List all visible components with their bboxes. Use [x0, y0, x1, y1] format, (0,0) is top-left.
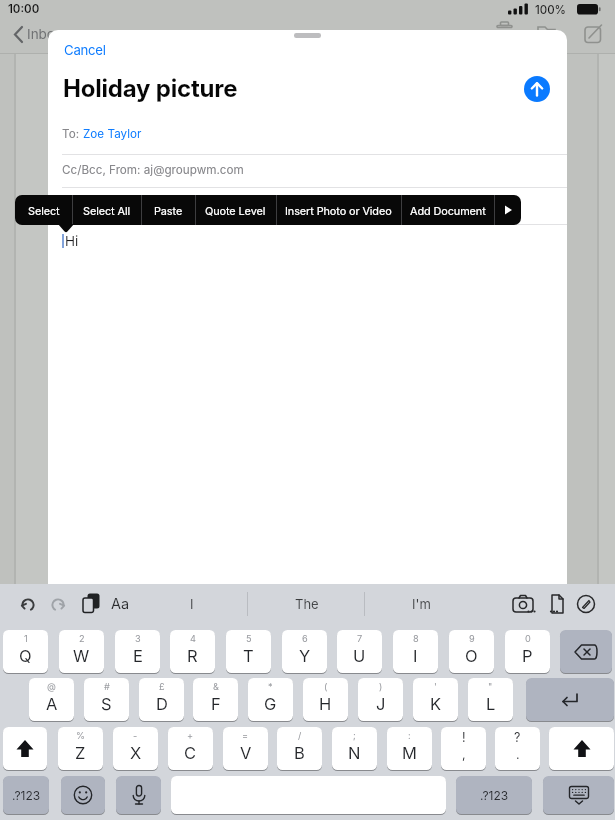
staticText: ;: [353, 730, 356, 741]
button[interactable]: Select: [15, 195, 72, 225]
staticText: (: [324, 681, 328, 692]
staticText: Add Document: [410, 204, 486, 217]
staticText: F: [211, 694, 221, 714]
staticText: S: [101, 694, 112, 714]
button[interactable]: &: [193, 678, 238, 721]
staticText: .?123: [12, 788, 41, 803]
button[interactable]: [543, 776, 614, 814]
staticText: M: [402, 743, 417, 763]
staticText: Z: [75, 743, 86, 763]
staticText: P: [522, 646, 533, 666]
staticText: .?123: [480, 788, 509, 803]
button[interactable]: /: [277, 727, 322, 770]
button[interactable]: Paste: [141, 195, 195, 225]
button[interactable]: [61, 776, 105, 814]
staticText: N: [348, 743, 361, 763]
staticText: 10:00: [8, 2, 40, 16]
button[interactable]: Cancel: [64, 42, 106, 58]
staticText: L: [486, 694, 496, 714]
staticText: H: [319, 694, 332, 714]
staticText: C: [184, 743, 197, 763]
button[interactable]: 0: [505, 630, 550, 673]
staticText: ': [434, 681, 437, 692]
button[interactable]: %: [58, 727, 103, 770]
button[interactable]: [560, 630, 612, 673]
staticText: Q: [19, 646, 32, 666]
staticText: 0: [525, 633, 531, 644]
button[interactable]: Select All: [72, 195, 141, 225]
staticText: O: [465, 646, 478, 666]
staticText: R: [187, 646, 198, 666]
staticText: =: [242, 730, 249, 741]
staticText: 4: [190, 633, 196, 644]
button[interactable]: ): [358, 678, 403, 721]
staticText: ): [379, 681, 383, 692]
button[interactable]: :: [387, 727, 432, 770]
staticText: Aa: [111, 595, 130, 613]
button[interactable]: [494, 195, 521, 225]
button[interactable]: @: [29, 678, 74, 721]
staticText: U: [353, 646, 366, 666]
staticText: G: [264, 694, 277, 714]
button[interactable]: [3, 727, 47, 770]
button[interactable]: ?: [495, 727, 540, 770]
staticText: 9: [469, 633, 475, 644]
staticText: .: [516, 747, 520, 762]
button[interactable]: 3: [115, 630, 160, 673]
button[interactable]: .?123: [456, 776, 532, 814]
button[interactable]: .?123: [3, 776, 49, 814]
staticText: Zoe Taylor: [83, 127, 142, 141]
button[interactable]: Add Document: [401, 195, 494, 225]
button[interactable]: (: [303, 678, 348, 721]
button[interactable]: !: [441, 727, 486, 770]
button[interactable]: Quote Level: [195, 195, 276, 225]
staticText: ": [488, 681, 493, 692]
button[interactable]: Cc/Bcc, From: aj@groupwm.com: [62, 163, 244, 177]
button[interactable]: #: [84, 678, 129, 721]
button[interactable]: [524, 76, 550, 102]
staticText: Inbox: [27, 26, 63, 42]
staticText: T: [243, 646, 254, 666]
staticText: £: [159, 681, 165, 692]
button[interactable]: 2: [59, 630, 104, 673]
staticText: Quote Level: [205, 204, 266, 217]
staticText: V: [240, 743, 252, 763]
staticText: 3: [135, 633, 141, 644]
button[interactable]: *: [248, 678, 293, 721]
staticText: Cc/Bcc, From: aj@groupwm.com: [62, 163, 244, 177]
button[interactable]: 5: [226, 630, 271, 673]
staticText: 8: [413, 633, 419, 644]
staticText: Paste: [154, 204, 183, 217]
button[interactable]: 8: [393, 630, 438, 673]
staticText: 7: [357, 633, 363, 644]
button[interactable]: 9: [449, 630, 494, 673]
button[interactable]: [526, 678, 614, 721]
staticText: Hi: [65, 233, 79, 249]
staticText: W: [73, 646, 90, 666]
staticText: :: [408, 730, 411, 741]
staticText: %: [76, 730, 86, 741]
staticText: B: [294, 743, 305, 763]
staticText: E: [133, 646, 143, 666]
button[interactable]: ': [413, 678, 458, 721]
button[interactable]: To:: [62, 127, 142, 141]
button[interactable]: £: [139, 678, 184, 721]
button[interactable]: [116, 776, 161, 814]
button[interactable]: =: [223, 727, 268, 770]
button[interactable]: 7: [337, 630, 382, 673]
button[interactable]: +: [168, 727, 213, 770]
staticText: #: [104, 681, 110, 692]
staticText: Holiday picture: [63, 74, 238, 103]
button[interactable]: -: [113, 727, 158, 770]
button[interactable]: 1: [3, 630, 48, 673]
button[interactable]: 6: [282, 630, 327, 673]
button[interactable]: [549, 727, 614, 770]
button[interactable]: ": [468, 678, 513, 721]
staticText: D: [156, 694, 168, 714]
button[interactable]: Insert Photo or Video: [276, 195, 401, 225]
staticText: Insert Photo or Video: [285, 204, 392, 217]
staticText: Select: [28, 204, 60, 217]
button[interactable]: ;: [332, 727, 377, 770]
button[interactable]: 4: [170, 630, 215, 673]
